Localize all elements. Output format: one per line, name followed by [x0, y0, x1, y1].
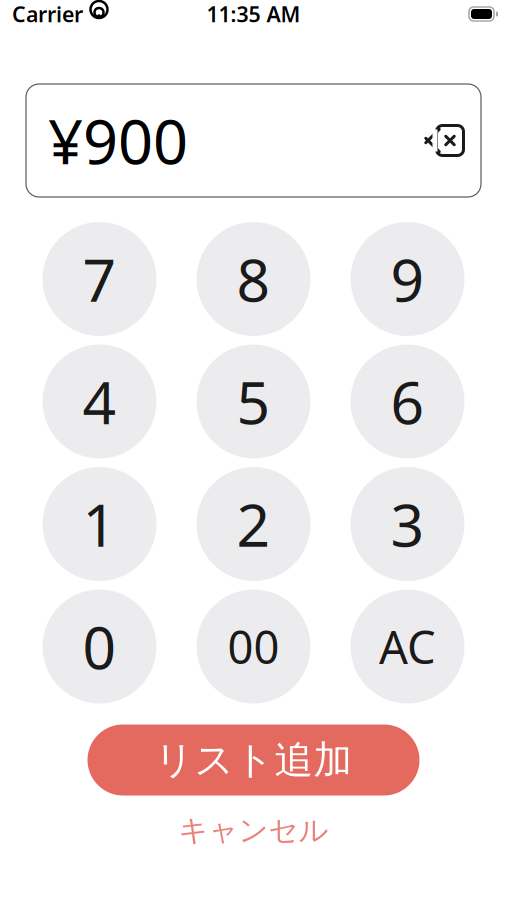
- staticText: AC: [379, 616, 436, 677]
- staticText: 8: [236, 240, 270, 318]
- button[interactable]: 8: [196, 222, 310, 336]
- button[interactable]: 00: [196, 589, 310, 703]
- staticText: 00: [227, 616, 279, 677]
- staticText: 3: [390, 485, 424, 563]
- staticText: Carrier: [12, 0, 83, 28]
- staticText: キャンセル: [178, 812, 328, 848]
- staticText: 9: [390, 240, 424, 318]
- button[interactable]: 2: [196, 467, 310, 581]
- button[interactable]: 1: [42, 467, 156, 581]
- staticText: 7: [82, 240, 116, 318]
- staticText: 11:35 AM: [206, 0, 300, 28]
- staticText: 6: [390, 362, 424, 440]
- button[interactable]: Delete: [415, 112, 471, 168]
- button[interactable]: 3: [350, 467, 464, 581]
- button[interactable]: 6: [350, 344, 464, 458]
- button[interactable]: 5: [196, 344, 310, 458]
- button[interactable]: リスト追加: [87, 724, 419, 795]
- button[interactable]: AC: [350, 589, 464, 703]
- button[interactable]: 0: [42, 589, 156, 703]
- staticText: 4: [82, 362, 116, 440]
- button[interactable]: 4: [42, 344, 156, 458]
- staticText: 5: [236, 362, 270, 440]
- staticText: リスト追加: [154, 736, 352, 784]
- button[interactable]: キャンセル: [153, 813, 353, 847]
- button[interactable]: 7: [42, 222, 156, 336]
- staticText: ¥900: [48, 100, 188, 181]
- staticText: 2: [236, 485, 270, 563]
- staticText: 0: [82, 607, 116, 685]
- staticText: 1: [82, 485, 116, 563]
- button[interactable]: 9: [350, 222, 464, 336]
